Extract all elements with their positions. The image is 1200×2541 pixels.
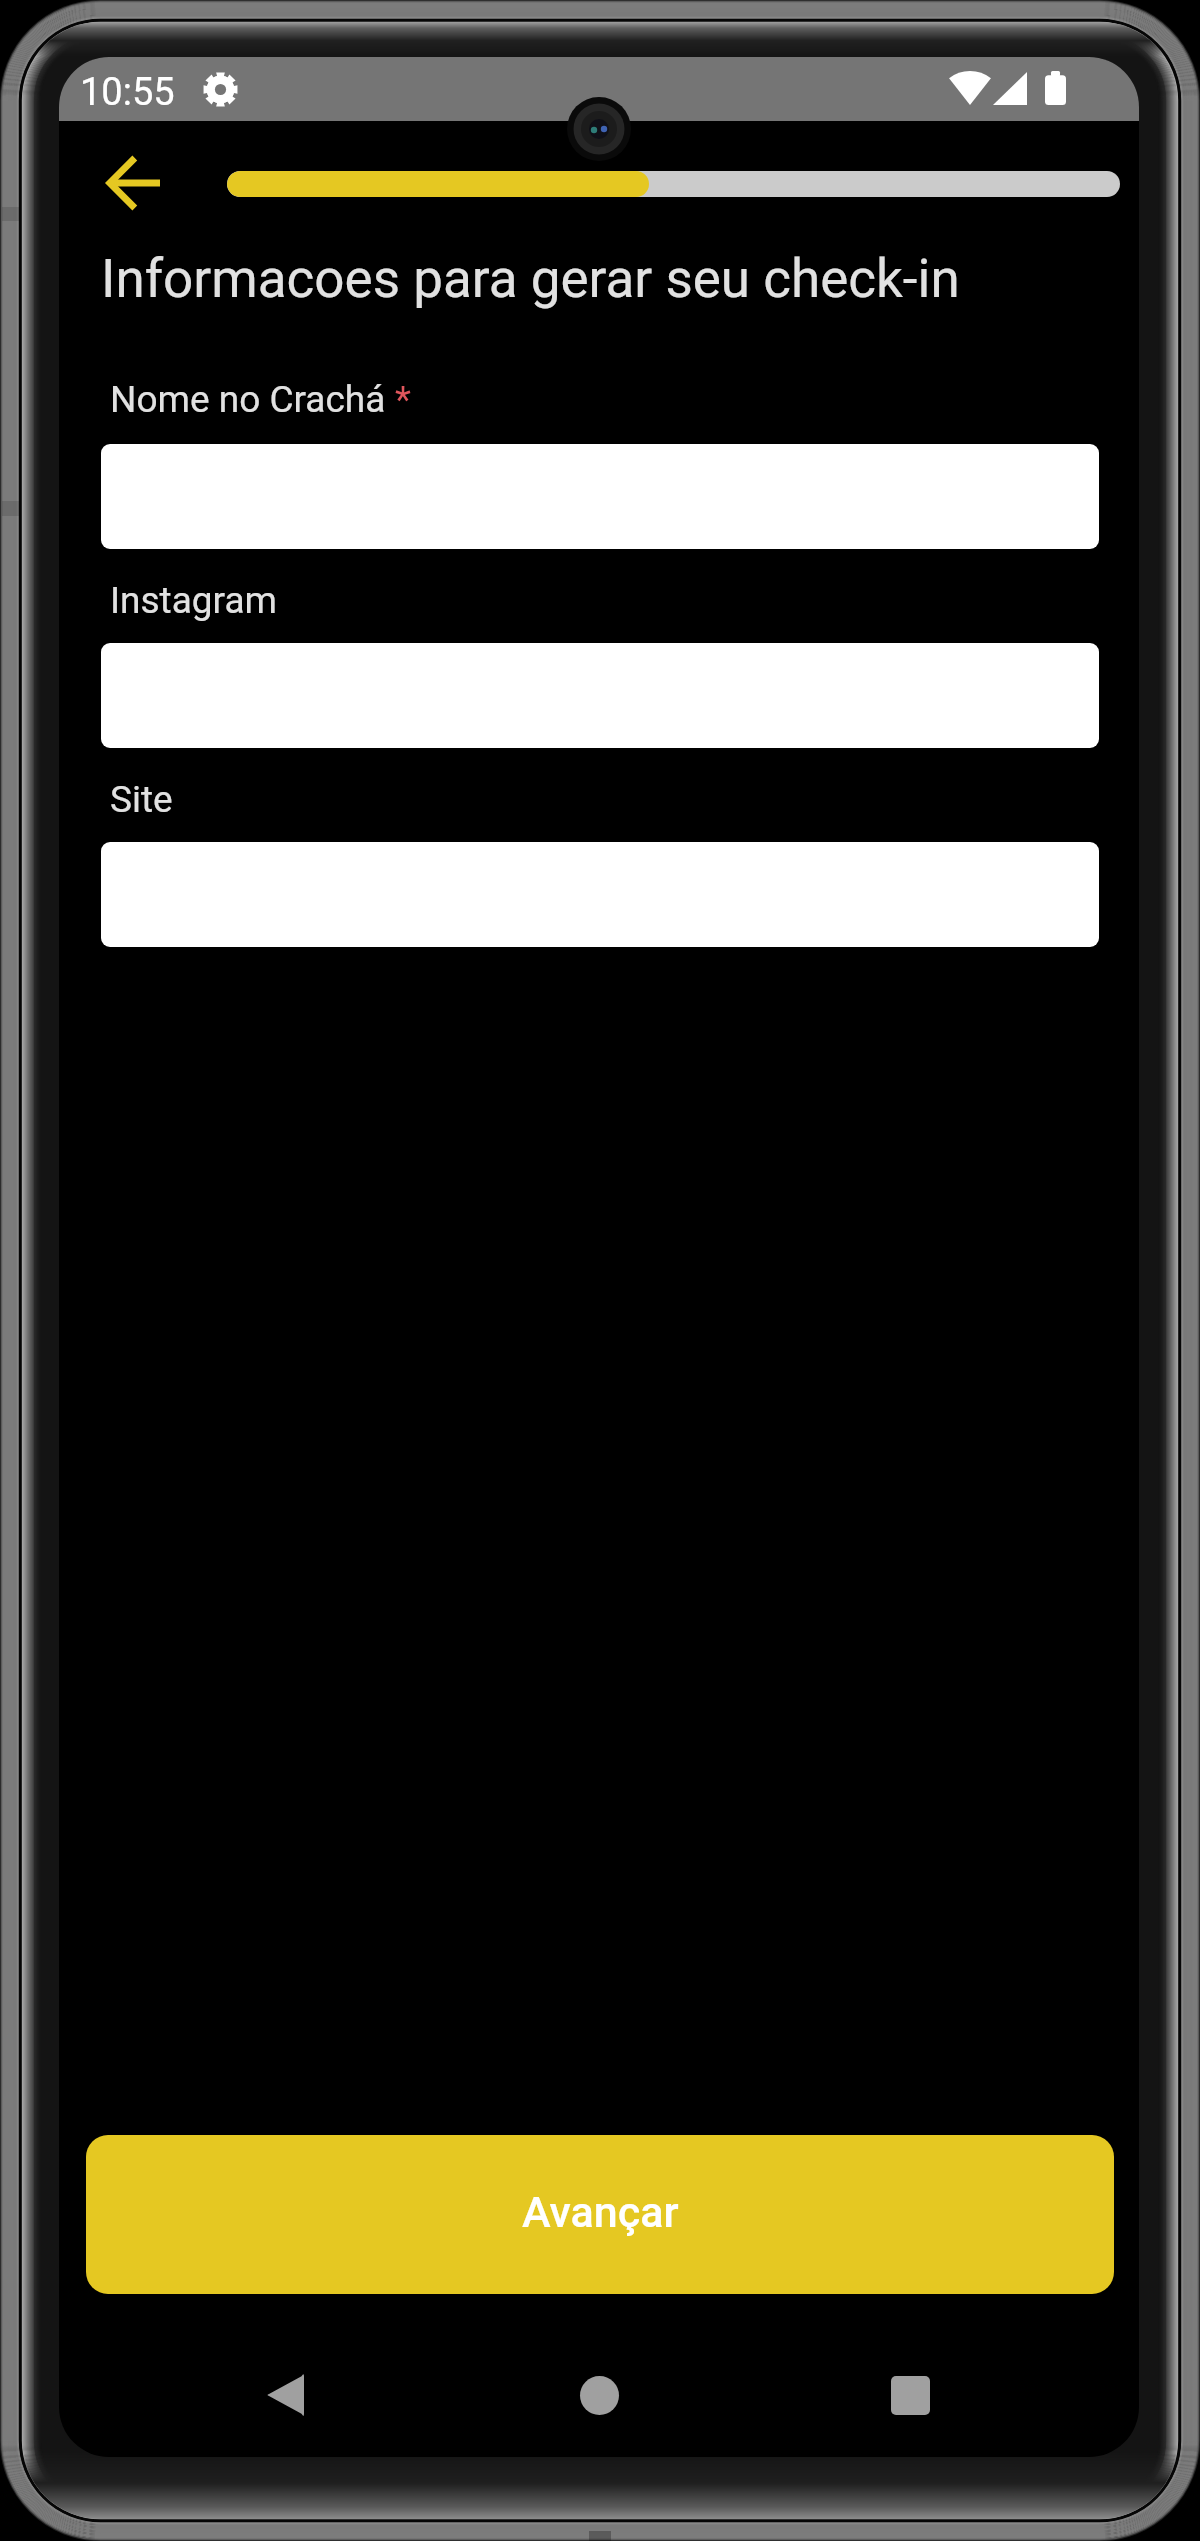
button[interactable]: Avançar — [86, 2135, 1114, 2294]
button[interactable]: Recentes — [850, 2335, 970, 2455]
staticText: Instagram — [110, 579, 277, 622]
staticText: Site — [110, 778, 173, 821]
button[interactable]: Voltar — [75, 153, 191, 213]
staticText: Informacoes para gerar seu check-in — [101, 248, 960, 310]
button[interactable] — [101, 842, 1099, 947]
staticText: Avançar — [522, 2187, 679, 2237]
button[interactable]: Início — [539, 2335, 659, 2455]
button[interactable] — [101, 643, 1099, 748]
staticText: * — [395, 378, 411, 421]
staticText: 10:55 — [80, 70, 175, 115]
button[interactable] — [101, 444, 1099, 549]
staticText: Nome no Crachá — [110, 378, 386, 421]
button[interactable]: Voltar — [225, 2335, 345, 2455]
